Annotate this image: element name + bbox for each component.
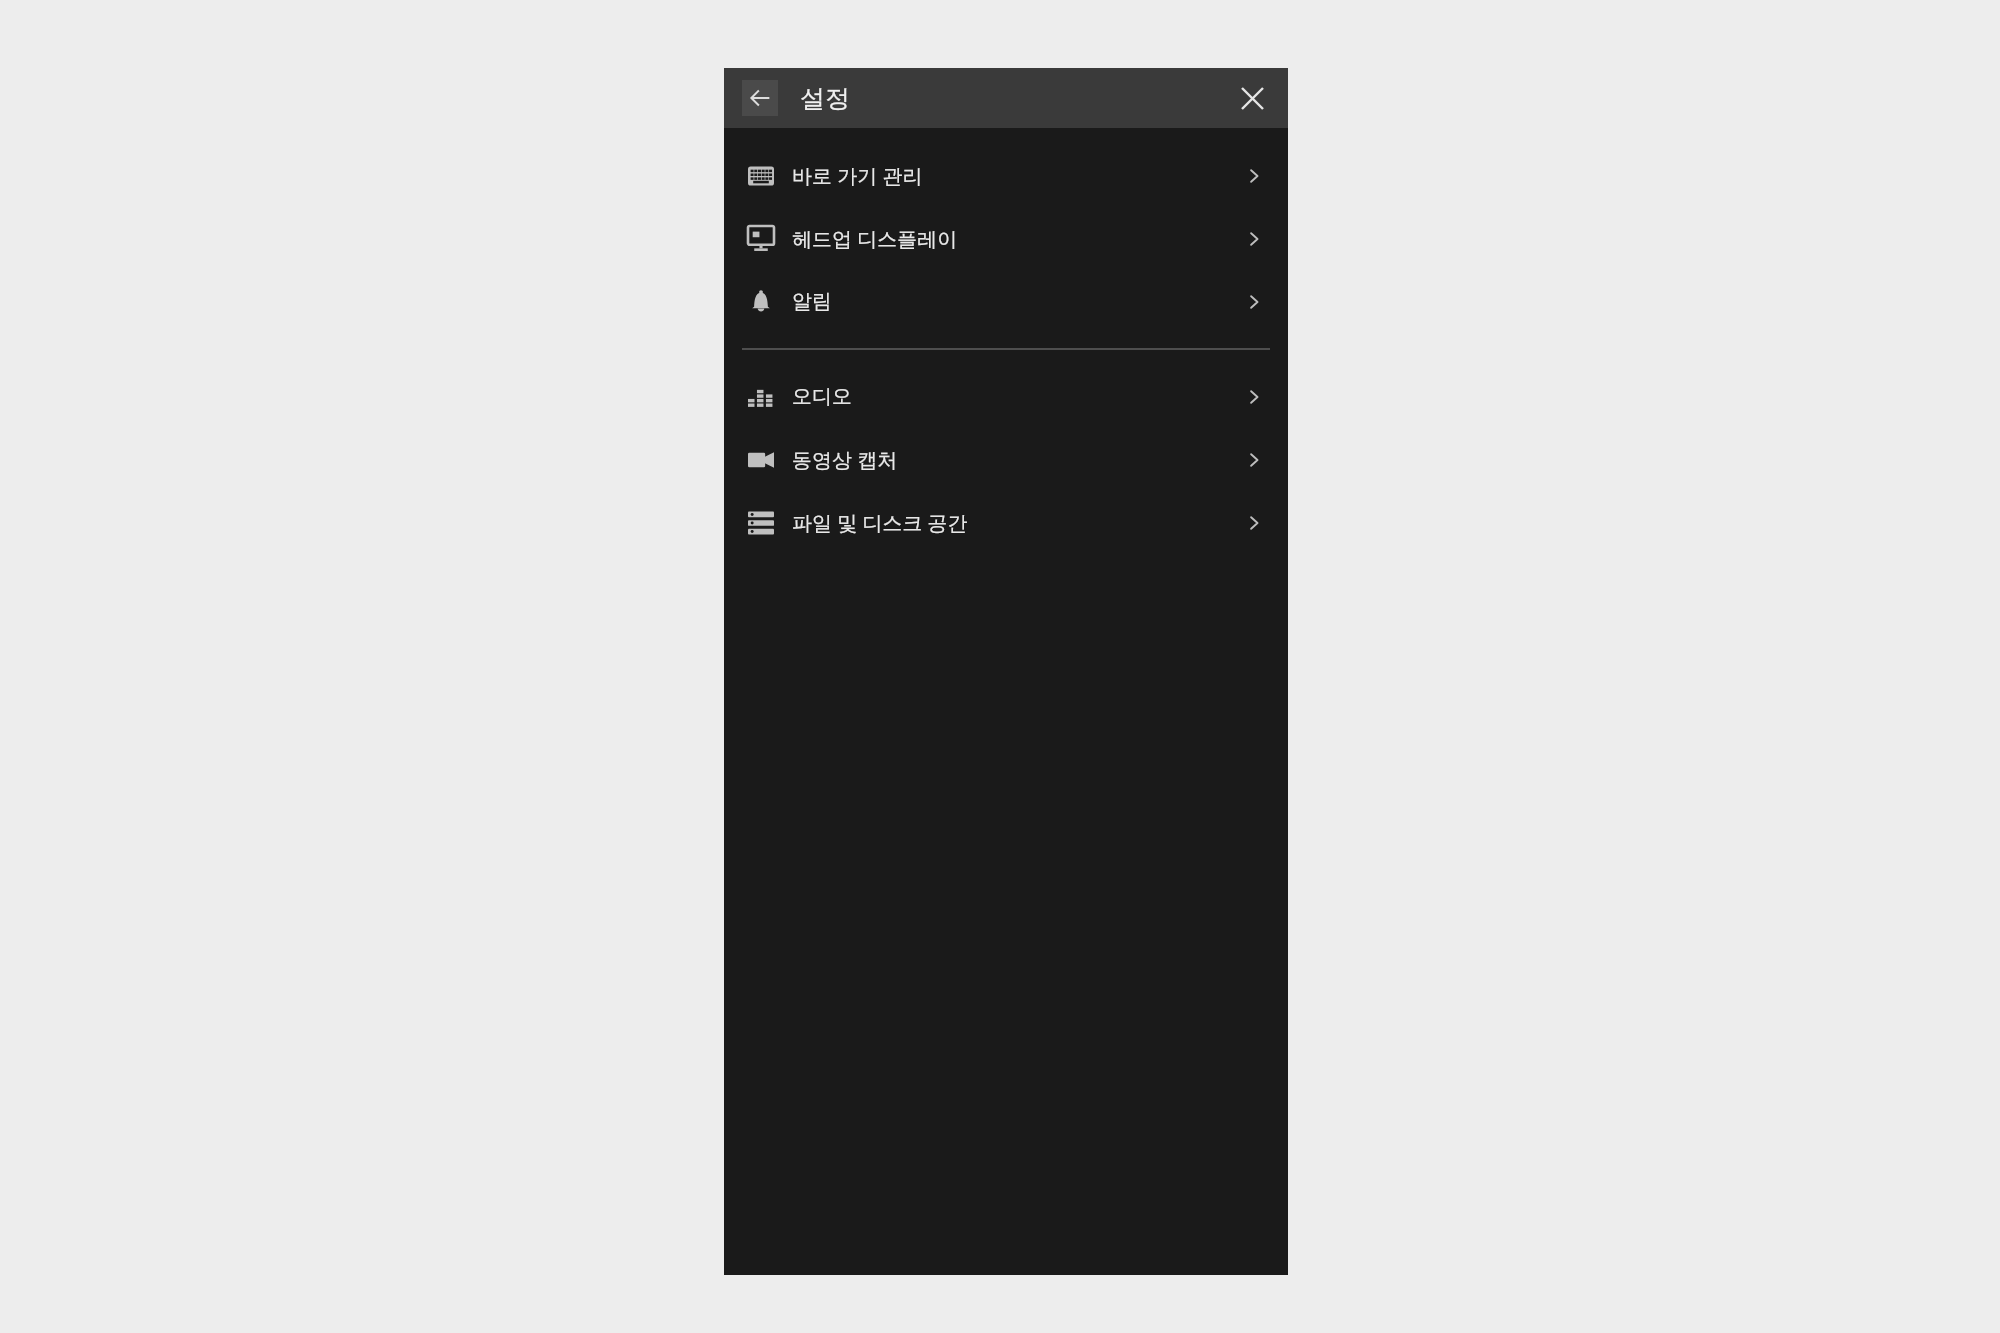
button[interactable]: 알림 [724, 270, 1288, 333]
staticText: 동영상 캡처 [792, 446, 1230, 473]
staticText: 바로 가기 관리 [792, 162, 1230, 189]
button[interactable]: 헤드업 디스플레이 [724, 207, 1288, 270]
staticText: 파일 및 디스크 공간 [792, 509, 1230, 536]
staticText: 알림 [792, 289, 1230, 314]
button[interactable]: 오디오 [724, 365, 1288, 428]
button[interactable]: 동영상 캡처 [724, 428, 1288, 491]
button[interactable]: Close [1230, 76, 1274, 120]
button[interactable]: Back [742, 80, 778, 116]
staticText: 헤드업 디스플레이 [792, 225, 1230, 252]
staticText: 설정 [800, 83, 850, 114]
staticText: 오디오 [792, 384, 1230, 409]
button[interactable]: 바로 가기 관리 [724, 144, 1288, 207]
button[interactable]: 파일 및 디스크 공간 [724, 491, 1288, 554]
